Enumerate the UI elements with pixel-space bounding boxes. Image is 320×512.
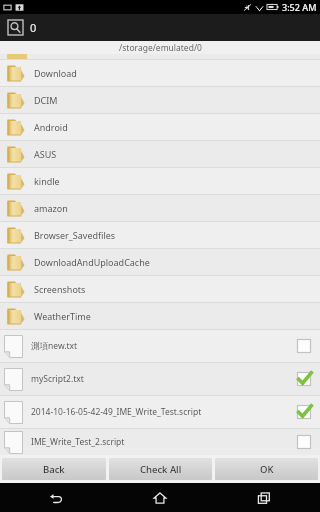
- button[interactable]: Checked: [294, 402, 314, 422]
- button[interactable]: Home: [147, 485, 173, 511]
- button[interactable]: Unchecked: [294, 432, 314, 452]
- staticText: Download: [34, 67, 77, 79]
- button[interactable]: kindle: [0, 168, 320, 194]
- button[interactable]: DCIM: [0, 87, 320, 113]
- staticText: Screenshots: [34, 283, 86, 295]
- button[interactable]: myScript2.txt: [0, 363, 320, 395]
- staticText: 0: [30, 20, 37, 35]
- staticText: WeatherTime: [34, 310, 91, 322]
- button[interactable]: amazon: [0, 195, 320, 221]
- staticText: 3:52 AM: [282, 1, 317, 13]
- button[interactable]: Back: [2, 458, 106, 480]
- staticText: 測項new.txt: [31, 340, 290, 352]
- staticText: kindle: [34, 175, 60, 187]
- button[interactable]: Unchecked: [294, 336, 314, 356]
- button[interactable]: 2014-10-16-05-42-49_IME_Write_Test.scrip…: [0, 396, 320, 428]
- button[interactable]: Search: [6, 18, 25, 37]
- staticText: /storage/emulated/0: [119, 42, 202, 54]
- staticText: amazon: [34, 202, 68, 214]
- staticText: ASUS: [34, 148, 57, 160]
- staticText: DCIM: [34, 94, 58, 106]
- staticText: OK: [260, 463, 274, 476]
- staticText: DownloadAndUploadCache: [34, 256, 150, 268]
- button[interactable]: Download: [0, 60, 320, 86]
- button[interactable]: DownloadAndUploadCache: [0, 249, 320, 275]
- button[interactable]: 測項new.txt: [0, 330, 320, 362]
- staticText: Back: [43, 463, 65, 476]
- button[interactable]: Checked: [294, 369, 314, 389]
- button[interactable]: OK: [215, 458, 318, 480]
- staticText: Android: [34, 121, 68, 133]
- button[interactable]: WeatherTime: [0, 303, 320, 329]
- button[interactable]: Back: [43, 485, 69, 511]
- button[interactable]: Browser_Savedfiles: [0, 222, 320, 248]
- button[interactable]: IME_Write_Test_2.script: [0, 429, 320, 455]
- button[interactable]: Android: [0, 114, 320, 140]
- button[interactable]: ASUS: [0, 141, 320, 167]
- staticText: Browser_Savedfiles: [34, 229, 116, 241]
- button[interactable]: Check All: [109, 458, 212, 480]
- staticText: IME_Write_Test_2.script: [31, 436, 290, 448]
- staticText: 2014-10-16-05-42-49_IME_Write_Test.scrip…: [31, 406, 290, 418]
- staticText: Check All: [140, 463, 182, 476]
- button[interactable]: Screenshots: [0, 276, 320, 302]
- button[interactable]: Recents: [251, 485, 277, 511]
- staticText: myScript2.txt: [31, 373, 290, 385]
- button[interactable]: [0, 54, 320, 59]
